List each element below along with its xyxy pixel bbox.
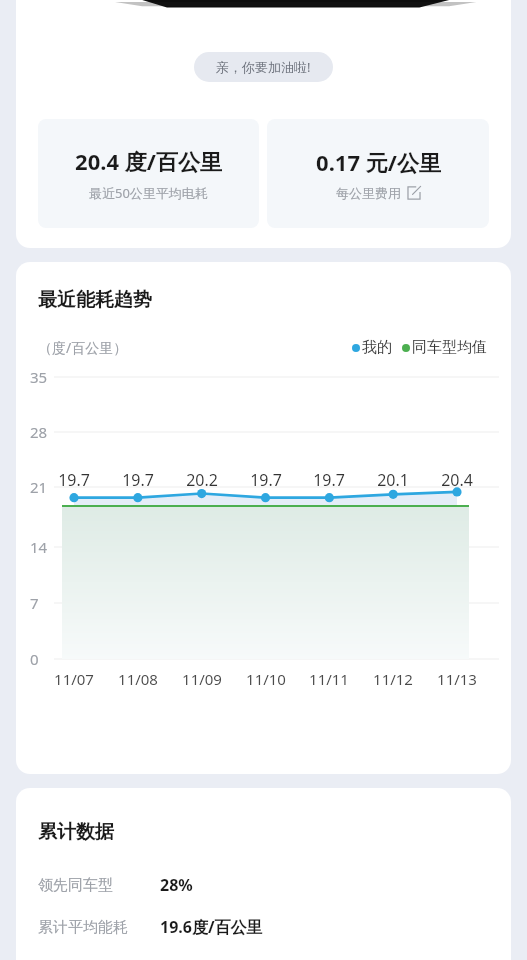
staticText: 亲，你要加油啦! [216,58,311,76]
staticText: 7 [30,593,39,613]
staticText: 每公里费用 [336,185,401,201]
button[interactable]: Edit cost per km [407,186,421,200]
staticText: 20.4 [441,469,473,491]
staticText: 11/13 [437,669,477,689]
button[interactable]: 20.4 度/百公里 [38,119,259,228]
staticText: 21 [30,477,48,497]
staticText: 11/12 [373,669,413,689]
button[interactable]: 累计平均能耗 [38,916,511,938]
staticText: 11/09 [182,669,222,689]
staticText: 最近50公里平均电耗 [89,184,208,202]
staticText: 20.4 度/百公里 [75,146,222,176]
staticText: 19.7 [313,469,345,491]
staticText: 领先同车型 [38,876,113,895]
staticText: 20.2 [186,469,218,491]
button[interactable]: 领先同车型 [38,874,511,896]
staticText: 19.7 [122,469,154,491]
staticText: 累计数据 [38,820,114,844]
staticText: 35 [30,367,48,387]
staticText: 11/07 [54,669,94,689]
button[interactable]: 亲，你要加油啦! [194,52,333,82]
staticText: （度/百公里） [38,338,128,357]
staticText: 11/08 [118,669,158,689]
staticText: 14 [30,537,48,557]
button[interactable]: 我的 [352,338,392,357]
staticText: 28 [30,422,48,442]
button[interactable]: 0.17 元/公里 [267,119,489,228]
staticText: 0.17 元/公里 [316,147,441,177]
staticText: 我的 [362,338,392,357]
staticText: 19.7 [58,469,90,491]
staticText: 0 [30,649,39,669]
staticText: 同车型均值 [412,338,487,357]
staticText: 11/11 [309,669,349,689]
staticText: 20.1 [377,469,409,491]
staticText: 最近能耗趋势 [38,288,152,312]
staticText: 19.7 [250,469,282,491]
staticText: 11/10 [246,669,286,689]
staticText: 19.6度/百公里 [160,916,263,938]
staticText: 累计平均能耗 [38,918,128,937]
button[interactable]: 同车型均值 [402,338,487,357]
staticText: 28% [160,874,193,896]
